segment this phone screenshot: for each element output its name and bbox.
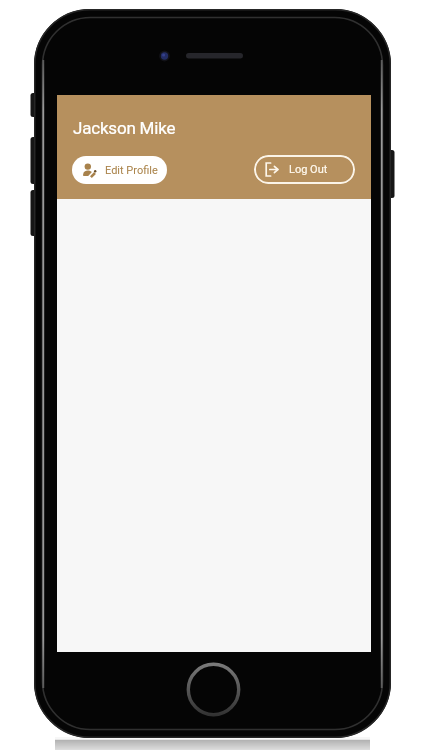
button[interactable]: Log Out [254, 155, 355, 184]
button[interactable]: Edit Profile [72, 156, 167, 184]
staticText: Log Out [289, 163, 328, 176]
staticText: Edit Profile [105, 164, 158, 177]
staticText: Jackson Mike [73, 118, 176, 138]
